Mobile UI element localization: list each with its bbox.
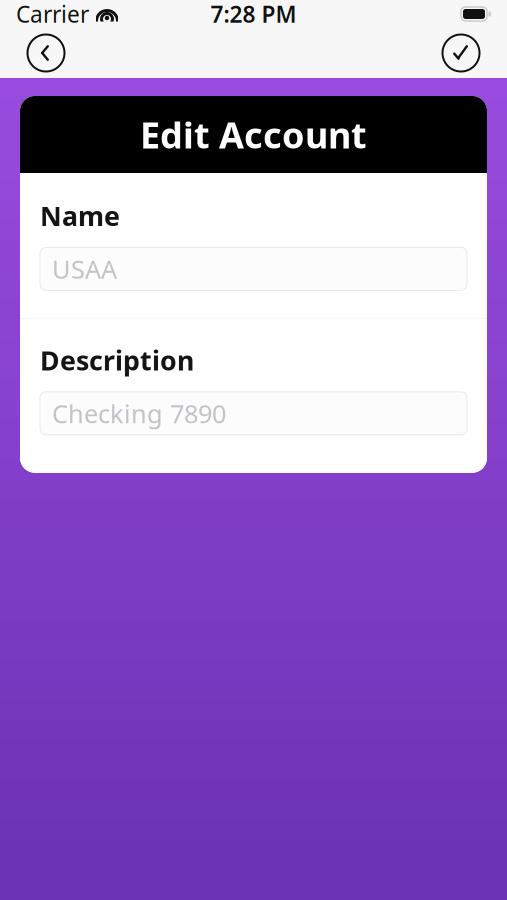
button[interactable]: Back [18, 28, 74, 78]
button[interactable]: USAA [40, 247, 467, 290]
staticText: Name [40, 198, 120, 233]
button[interactable]: Save [433, 28, 489, 78]
staticText: Carrier [16, 0, 89, 29]
staticText: Description [40, 342, 194, 378]
staticText: Checking 7890 [52, 396, 226, 430]
staticText: USAA [52, 252, 117, 286]
button[interactable]: Checking 7890 [40, 392, 467, 435]
staticText: 7:28 PM [210, 0, 296, 29]
staticText: Edit Account [140, 111, 367, 158]
